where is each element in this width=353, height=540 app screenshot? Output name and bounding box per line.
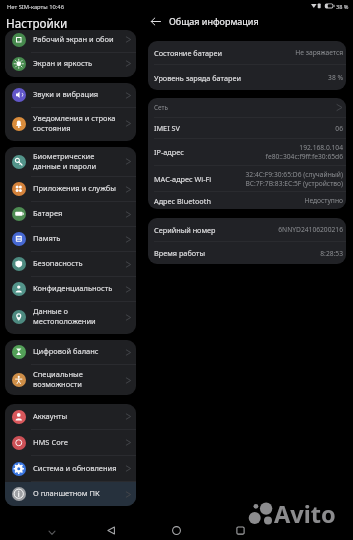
button[interactable]: Скрыть клавиатуру — [43, 522, 60, 539]
staticText: Не заряжается — [295, 48, 343, 57]
staticText: Общая информация — [169, 15, 259, 27]
button[interactable]: Уведомления и строка — [5, 108, 136, 139]
button[interactable]: Батарея — [5, 202, 136, 226]
button[interactable]: Рабочий экран и обои — [5, 30, 136, 52]
staticText: Недоступно — [304, 196, 343, 205]
staticText: Аккаунты — [33, 411, 68, 421]
button[interactable]: Безопасность — [5, 252, 136, 276]
staticText: IMEI SV — [154, 123, 180, 133]
staticText: Состояние батареи — [154, 48, 223, 58]
staticText: Настройки — [6, 15, 68, 31]
button[interactable]: Звуки и вибрация — [5, 83, 136, 107]
button[interactable]: Данные о — [5, 302, 136, 332]
staticText: Конфиденциальность — [33, 283, 113, 293]
staticText: Рабочий экран и обои — [33, 34, 114, 44]
staticText: О планшетном ПК — [33, 488, 100, 498]
button[interactable]: IP-адрес — [148, 139, 346, 165]
staticText: Приложения и службы — [33, 183, 117, 193]
staticText: Данные о — [33, 306, 69, 316]
button[interactable]: Конфиденциальность — [5, 277, 136, 301]
staticText: BC:7F:7B:83:EC:5F (устройство) — [245, 179, 343, 188]
staticText: 192.168.0.104 — [299, 143, 343, 152]
button[interactable]: Серийный номер — [148, 218, 346, 241]
staticText: Avito — [274, 498, 336, 530]
button[interactable]: HMS Core — [5, 430, 136, 455]
staticText: IP-адрес — [154, 147, 184, 157]
staticText: Биометрические — [33, 151, 95, 161]
button[interactable]: Аккаунты — [5, 404, 136, 429]
staticText: Сеть — [154, 103, 169, 112]
staticText: Экран и яркость — [33, 58, 93, 68]
staticText: 32:4C:F9:30:65:D6 (случайный) — [245, 170, 343, 179]
staticText: Система и обновления — [33, 463, 117, 473]
button[interactable]: Адрес Bluetooth — [148, 192, 346, 209]
button[interactable]: Специальные — [5, 365, 136, 395]
staticText: 8:28:53 — [320, 249, 343, 258]
staticText: 38 % — [328, 73, 343, 82]
staticText: Уведомления и строка — [33, 113, 116, 123]
staticText: Память — [33, 233, 61, 243]
button[interactable]: Сеть — [148, 98, 346, 117]
button[interactable]: Цифровой баланс — [5, 340, 136, 364]
button[interactable]: Память — [5, 227, 136, 251]
staticText: HMS Core — [33, 437, 68, 447]
staticText: fe80::304c:f9ff:fe30:65d6 — [265, 152, 343, 161]
button[interactable]: Назад — [103, 522, 120, 539]
button[interactable]: Уровень заряда батареи — [148, 65, 346, 90]
button[interactable]: Система и обновления — [5, 456, 136, 481]
button[interactable]: MAC-адрес Wi-Fi — [148, 166, 346, 191]
staticText: Батарея — [33, 208, 63, 218]
button[interactable]: Состояние батареи — [148, 41, 346, 64]
staticText: Адрес Bluetooth — [154, 196, 211, 206]
staticText: Звуки и вибрация — [33, 89, 99, 99]
staticText: 6NNYD24106200216 — [278, 225, 343, 234]
staticText: Цифровой баланс — [33, 346, 99, 356]
staticText: местоположении — [33, 316, 96, 326]
button[interactable]: Приложения и службы — [5, 177, 136, 201]
staticText: Уровень заряда батареи — [154, 73, 242, 83]
staticText: Серийный номер — [154, 225, 216, 235]
staticText: возможности — [33, 379, 83, 389]
button[interactable]: Недавние приложения — [232, 522, 249, 539]
button[interactable]: Главный экран — [168, 522, 185, 539]
button[interactable]: Биометрические — [5, 147, 136, 176]
staticText: Время работы — [154, 248, 205, 258]
staticText: 38 % — [336, 3, 349, 11]
button[interactable]: Экран и яркость — [5, 53, 136, 74]
staticText: Безопасность — [33, 258, 83, 268]
button[interactable]: IMEI SV — [148, 118, 346, 138]
staticText: MAC-адрес Wi-Fi — [154, 174, 212, 184]
button[interactable]: О планшетном ПК — [5, 482, 136, 506]
button[interactable]: Время работы — [148, 242, 346, 264]
staticText: 06 — [335, 124, 343, 133]
staticText: Специальные — [33, 369, 83, 379]
staticText: Нет SIM-карты 10:46 — [7, 3, 64, 11]
staticText: состояния — [33, 123, 71, 133]
button[interactable]: Назад — [148, 14, 163, 29]
staticText: данные и пароли — [33, 161, 97, 171]
